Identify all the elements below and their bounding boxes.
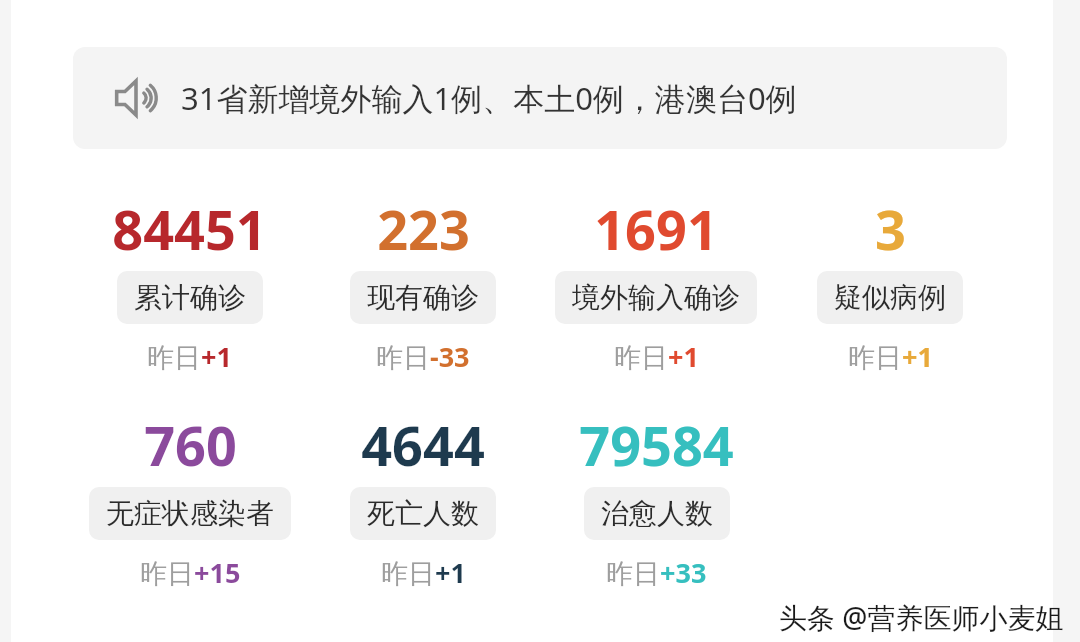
staticText: 昨日+1 [614, 338, 699, 375]
staticText: 无症状感染者 [106, 496, 274, 531]
staticText: 现有确诊 [367, 280, 479, 315]
staticText: 昨日+1 [147, 338, 232, 375]
other: Play announcement [113, 75, 159, 121]
staticText: 79584 [579, 408, 734, 482]
staticText: 境外输入确诊 [572, 280, 740, 315]
button[interactable]: 84451 [112, 192, 267, 375]
staticText: 昨日-33 [376, 338, 470, 375]
button[interactable]: 1691 [555, 192, 757, 375]
button[interactable]: Play announcement [73, 47, 1007, 149]
staticText: 4644 [361, 408, 485, 482]
staticText: 760 [144, 408, 237, 482]
staticText: 223 [377, 192, 470, 266]
button[interactable]: 4644 [350, 408, 496, 591]
staticText: 3 [875, 192, 906, 266]
staticText: 死亡人数 [367, 496, 479, 531]
staticText: 昨日+33 [606, 554, 707, 591]
staticText: 累计确诊 [134, 280, 246, 315]
staticText: 1691 [594, 192, 718, 266]
staticText: 疑似病例 [834, 280, 946, 315]
button[interactable]: 79584 [579, 408, 734, 591]
staticText: 31省新增境外输入1例、本土0例，港澳台0例 [181, 77, 797, 119]
button[interactable]: 223 [350, 192, 496, 375]
staticText: 昨日+1 [381, 554, 466, 591]
staticText: 84451 [112, 192, 267, 266]
staticText: 昨日+15 [140, 554, 241, 591]
staticText: 昨日+1 [848, 338, 933, 375]
staticText: 头条 @营养医师小麦姐 [779, 598, 1064, 636]
button[interactable]: 3 [817, 192, 963, 375]
button[interactable]: 760 [89, 408, 291, 591]
staticText: 治愈人数 [601, 496, 713, 531]
